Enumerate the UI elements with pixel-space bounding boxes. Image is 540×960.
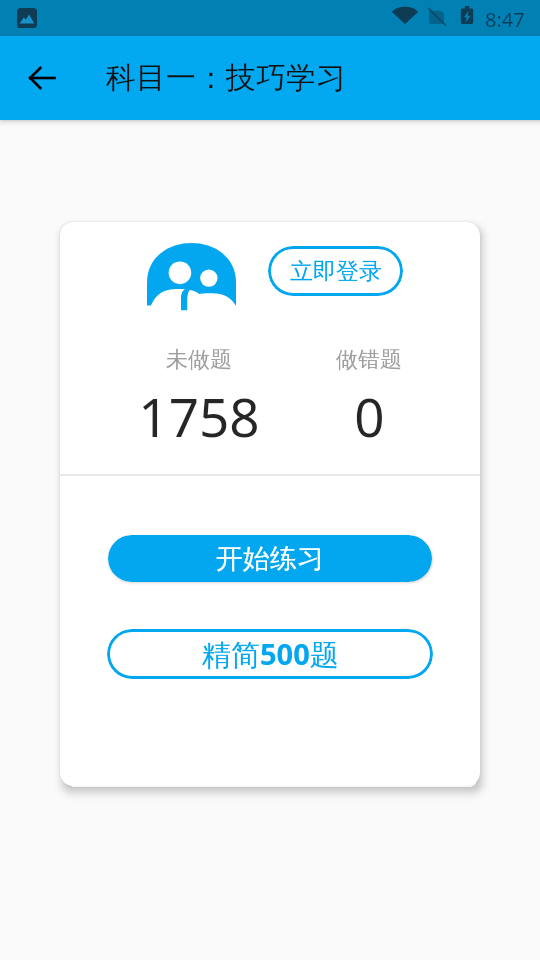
staticText: 科目一：技巧学习 — [106, 59, 346, 97]
staticText: 1758 — [138, 380, 260, 452]
staticText: 精简500题 — [202, 634, 339, 674]
button[interactable]: 开始练习 — [108, 535, 432, 582]
staticText: 0 — [354, 380, 385, 452]
button[interactable]: 立即登录 — [268, 246, 403, 296]
staticText: 未做题 — [166, 346, 232, 374]
button[interactable]: Back — [12, 48, 72, 108]
button[interactable]: Account avatar — [147, 241, 236, 311]
staticText: 立即登录 — [290, 257, 382, 286]
button[interactable]: 精简500题 — [107, 629, 433, 679]
staticText: 开始练习 — [216, 542, 324, 576]
staticText: 做错题 — [336, 346, 402, 374]
staticText: 8:47 — [485, 6, 525, 33]
